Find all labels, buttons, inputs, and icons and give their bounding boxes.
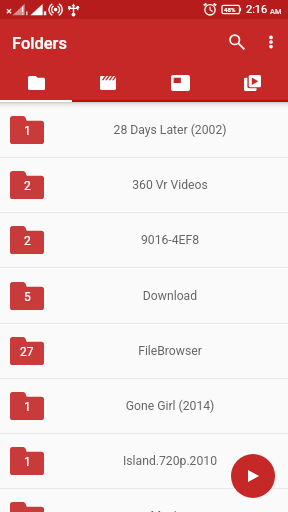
button[interactable]: 2 [0, 212, 288, 267]
button[interactable]: Search [220, 25, 253, 58]
button[interactable]: More options [254, 25, 287, 58]
staticText: 1 [24, 400, 31, 414]
button[interactable]: 1 [0, 433, 288, 488]
staticText: 360 Vr Videos [52, 178, 288, 192]
staticText: 2:16 [246, 3, 270, 16]
staticText: 48% [224, 6, 236, 13]
staticText: 2 [24, 234, 31, 248]
button[interactable]: 27 [0, 323, 288, 378]
button[interactable]: Library tab [216, 64, 288, 102]
button[interactable]: 1 [0, 102, 288, 157]
staticText: FileBrowser [52, 344, 288, 358]
staticText: Island.720p.2010 [52, 454, 288, 468]
button[interactable]: 1 [0, 378, 288, 433]
staticText: Folders [12, 34, 67, 53]
staticText: 27 [20, 345, 34, 359]
staticText: 28 Days Later (2002) [52, 123, 288, 137]
button[interactable]: Folders tab [0, 64, 72, 102]
button[interactable]: Play [231, 454, 275, 498]
staticText: Movies [52, 509, 288, 512]
button[interactable]: Featured tab [144, 64, 216, 102]
staticText: AM [270, 7, 282, 16]
button[interactable]: Movies tab [72, 64, 144, 102]
staticText: 5 [24, 290, 31, 304]
staticText: 1 [24, 124, 31, 138]
staticText: 9016-4EF8 [52, 233, 288, 247]
button[interactable]: 3 [0, 488, 288, 512]
staticText: Download [52, 289, 288, 303]
button[interactable]: 2 [0, 157, 288, 212]
staticText: 2 [24, 179, 31, 193]
staticText: 1 [24, 455, 31, 469]
staticText: Gone Girl (2014) [52, 399, 288, 413]
button[interactable]: 5 [0, 268, 288, 323]
